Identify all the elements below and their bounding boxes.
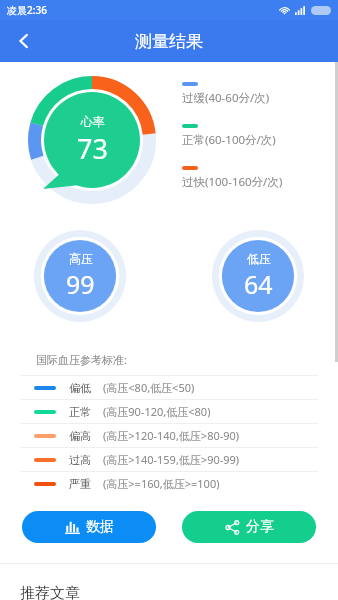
staticText: 数据 [86, 518, 114, 536]
staticText: 过高 [69, 453, 103, 467]
staticText: 凌晨2:36 [7, 3, 47, 17]
staticText: (高压90-120,低压<80) [103, 404, 211, 419]
staticText: 严重 [69, 477, 103, 491]
staticText: (高压>=160,低压>=100) [103, 476, 220, 491]
button[interactable]: Back [6, 23, 42, 59]
staticText: (高压>140-159,低压>90-99) [103, 452, 240, 467]
staticText: 64 [244, 267, 273, 301]
staticText: 过缓(40-60分/次) [182, 90, 270, 106]
staticText: 高压 [69, 251, 93, 266]
staticText: 偏低 [69, 381, 103, 395]
staticText: 测量结果 [135, 31, 203, 52]
staticText: 低压 [247, 251, 271, 266]
staticText: 推荐文章 [20, 584, 80, 600]
staticText: 过快(100-160分/次) [182, 174, 283, 190]
staticText: (高压<80,低压<50) [103, 380, 195, 395]
staticText: 73 [77, 130, 108, 167]
staticText: 正常 [69, 405, 103, 419]
staticText: 心率 [81, 114, 105, 129]
staticText: 分享 [246, 518, 274, 536]
staticText: 国际血压参考标准: [36, 352, 127, 367]
staticText: 99 [66, 267, 95, 301]
staticText: (高压>120-140,低压>80-90) [103, 428, 240, 443]
button[interactable]: 分享 [182, 511, 316, 543]
button[interactable]: 数据 [22, 511, 156, 543]
staticText: 正常(60-100分/次) [182, 132, 276, 148]
staticText: 偏高 [69, 429, 103, 443]
